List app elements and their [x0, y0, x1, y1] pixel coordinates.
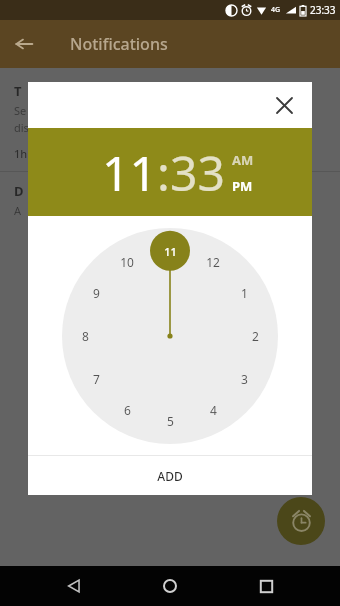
staticText: 11	[164, 244, 177, 259]
staticText: Se	[14, 103, 27, 118]
button[interactable]: 4	[193, 390, 233, 430]
button[interactable]: 8	[65, 316, 105, 356]
button[interactable]: 33	[170, 140, 225, 205]
button[interactable]: 10	[107, 242, 147, 282]
staticText: A	[14, 203, 22, 218]
button[interactable]: 3	[224, 359, 264, 399]
button[interactable]: Add alarm	[277, 497, 325, 545]
staticText: dis	[14, 120, 29, 135]
button[interactable]: ADD	[28, 456, 312, 495]
staticText: 6	[124, 402, 131, 418]
staticText: 7	[93, 371, 100, 387]
staticText: 9	[93, 285, 100, 301]
staticText: :	[157, 140, 170, 205]
staticText: 1	[241, 285, 248, 301]
button[interactable]: 2	[235, 316, 275, 356]
staticText: 4G	[271, 5, 281, 15]
button[interactable]: 5	[150, 401, 190, 441]
button[interactable]: 7	[76, 359, 116, 399]
staticText: 4	[210, 402, 217, 418]
staticText: D	[14, 182, 24, 200]
staticText: 3	[241, 371, 248, 387]
staticText: 2	[252, 328, 259, 344]
staticText: ADD	[157, 468, 183, 484]
button[interactable]: Back	[52, 566, 96, 606]
staticText: 8	[82, 328, 89, 344]
button[interactable]: 1	[224, 273, 264, 313]
button[interactable]: Close	[268, 89, 300, 121]
staticText: 12	[206, 254, 220, 270]
staticText: T	[14, 82, 22, 100]
button[interactable]: PM	[232, 177, 253, 195]
staticText: 23:33	[310, 3, 336, 17]
staticText: Notifications	[70, 33, 168, 55]
button[interactable]: 12	[193, 242, 233, 282]
button[interactable]: AM	[232, 151, 254, 169]
button[interactable]: Home	[148, 566, 192, 606]
staticText: 10	[120, 254, 134, 270]
button[interactable]: 6	[107, 390, 147, 430]
staticText: 5	[167, 413, 174, 429]
button[interactable]: 11	[102, 140, 157, 205]
button[interactable]: 9	[76, 273, 116, 313]
button[interactable]: Back	[14, 34, 34, 54]
button[interactable]: 11	[150, 231, 190, 271]
staticText: 1h	[14, 146, 28, 161]
button[interactable]: Recent apps	[244, 566, 288, 606]
